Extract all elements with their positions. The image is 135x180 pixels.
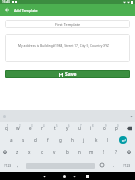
staticText: 9 — [105, 124, 107, 128]
staticText: r — [41, 125, 43, 131]
staticText: l — [107, 137, 109, 143]
staticText: First Template — [55, 22, 81, 27]
staticText: My address is Building#1984, Street 17, … — [18, 43, 109, 47]
button[interactable]: w — [12, 122, 24, 134]
staticText: s — [22, 137, 25, 143]
button[interactable]: Emoji — [96, 158, 108, 172]
button[interactable]: Home — [59, 172, 70, 180]
staticText: c — [41, 149, 44, 155]
staticText: p — [115, 125, 118, 131]
staticText: t — [54, 125, 56, 131]
staticText: 7 — [80, 124, 82, 128]
staticText: n — [78, 149, 81, 155]
staticText: k — [95, 137, 98, 143]
staticText: y — [66, 125, 69, 131]
button[interactable]: Navigate back — [0, 4, 14, 16]
staticText: g — [59, 137, 62, 143]
button[interactable]: Save — [5, 70, 130, 78]
button[interactable]: b — [61, 146, 73, 158]
staticText: 2 — [19, 124, 21, 128]
staticText: 8 — [92, 124, 94, 128]
staticText: i — [90, 125, 92, 131]
staticText: ?123 — [4, 163, 12, 168]
staticText: ?123 — [123, 163, 131, 168]
button[interactable]: h — [66, 134, 78, 146]
staticText: , — [17, 162, 19, 168]
staticText: w — [16, 125, 20, 131]
button[interactable]: y — [61, 122, 73, 134]
staticText: f — [47, 137, 49, 143]
staticText: 3 — [31, 124, 33, 128]
staticText: ! — [103, 149, 105, 155]
button[interactable]: g — [54, 134, 66, 146]
staticText: x — [28, 149, 31, 155]
staticText: o — [103, 125, 106, 131]
button[interactable]: Enter — [117, 134, 129, 146]
button[interactable]: n — [73, 146, 85, 158]
staticText: z — [16, 149, 19, 155]
staticText: v — [53, 149, 56, 155]
button[interactable]: t — [49, 122, 61, 134]
button[interactable]: r — [36, 122, 48, 134]
button[interactable]: f — [42, 134, 54, 146]
staticText: 4 — [43, 124, 45, 128]
button[interactable]: Shift — [0, 146, 11, 158]
button[interactable]: z — [11, 146, 23, 158]
button[interactable]: Recent apps — [82, 172, 93, 180]
button[interactable]: More options — [129, 114, 134, 119]
staticText: 0 — [117, 124, 119, 128]
button[interactable]: ?123 — [1, 158, 15, 172]
button[interactable]: , — [12, 158, 24, 172]
button[interactable]: x — [23, 146, 35, 158]
button[interactable]: e — [24, 122, 36, 134]
button[interactable]: d — [29, 134, 41, 146]
button[interactable]: m — [85, 146, 97, 158]
button[interactable]: v — [48, 146, 60, 158]
staticText: q — [5, 125, 8, 131]
button[interactable]: Voice input — [2, 114, 7, 119]
button[interactable]: Back — [38, 172, 50, 180]
staticText: 6 — [68, 124, 70, 128]
staticText: d — [34, 137, 37, 143]
staticText: e — [29, 125, 32, 131]
button[interactable]: o — [98, 122, 110, 134]
staticText: ? — [115, 149, 117, 155]
button[interactable]: First Template — [5, 20, 130, 28]
button[interactable]: s — [17, 134, 29, 146]
button[interactable]: Backspace — [123, 122, 135, 134]
button[interactable]: Shift — [123, 146, 135, 158]
staticText: m — [89, 149, 94, 155]
staticText: j — [83, 137, 85, 143]
button[interactable]: u — [73, 122, 85, 134]
button[interactable]: ?123 — [120, 158, 134, 172]
button[interactable]: i — [85, 122, 97, 134]
button[interactable]: a — [5, 134, 17, 146]
button[interactable]: q — [0, 122, 12, 134]
staticText: 1 — [7, 124, 9, 128]
staticText: a — [10, 137, 13, 143]
staticText: Save — [65, 71, 77, 78]
staticText: 5 — [56, 124, 58, 128]
button[interactable]: My address is Building#1984, Street 17, … — [5, 34, 130, 62]
staticText: h — [71, 137, 74, 143]
staticText: . — [113, 162, 115, 168]
button[interactable]: . — [108, 158, 120, 172]
button[interactable]: j — [78, 134, 90, 146]
staticText: Add Template — [14, 8, 38, 13]
button[interactable]: l — [102, 134, 114, 146]
staticText: b — [66, 149, 69, 155]
button[interactable]: ! — [98, 146, 110, 158]
staticText: u — [78, 125, 81, 131]
button[interactable]: ? — [110, 146, 122, 158]
button[interactable]: k — [90, 134, 102, 146]
button[interactable]: p — [110, 122, 122, 134]
button[interactable]: Switch input method — [69, 172, 80, 180]
staticText: 16:45 — [2, 0, 11, 4]
button[interactable]: c — [36, 146, 48, 158]
